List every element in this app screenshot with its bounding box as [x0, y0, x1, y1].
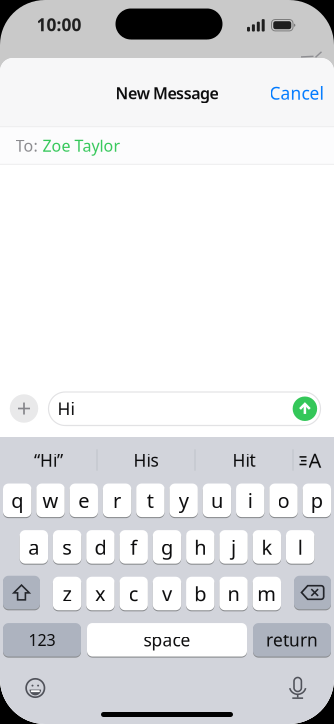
staticText: s: [62, 534, 72, 560]
staticText: return: [266, 628, 318, 651]
button[interactable]: w: [36, 483, 65, 518]
staticText: e: [78, 487, 89, 514]
button[interactable]: Emoji: [24, 677, 46, 699]
button[interactable]: t: [136, 483, 165, 518]
button[interactable]: Dictate: [289, 676, 307, 700]
button[interactable]: b: [186, 576, 214, 611]
staticText: o: [277, 487, 289, 514]
button[interactable]: Delete: [294, 575, 331, 610]
staticText: Hit: [232, 448, 255, 471]
staticText: b: [194, 580, 206, 607]
staticText: k: [261, 534, 272, 560]
staticText: A: [308, 447, 321, 473]
staticText: l: [298, 534, 303, 560]
button[interactable]: v: [153, 576, 181, 611]
button[interactable]: q: [3, 483, 31, 518]
button[interactable]: z: [53, 576, 81, 611]
staticText: h: [194, 534, 206, 560]
staticText: r: [113, 487, 121, 514]
button[interactable]: y: [169, 483, 198, 518]
button[interactable]: h: [186, 530, 214, 564]
button[interactable]: His: [101, 445, 191, 475]
staticText: 123: [28, 629, 55, 650]
button[interactable]: x: [86, 576, 115, 611]
button[interactable]: u: [203, 483, 231, 518]
button[interactable]: g: [153, 530, 181, 564]
button[interactable]: l: [286, 530, 314, 564]
staticText: space: [143, 628, 190, 651]
staticText: j: [231, 534, 236, 560]
button[interactable]: i: [236, 483, 264, 518]
staticText: w: [42, 487, 58, 514]
button[interactable]: Cancel: [269, 81, 323, 104]
staticText: New Message: [115, 82, 218, 104]
staticText: i: [248, 487, 253, 514]
staticText: To:: [15, 135, 37, 156]
button[interactable]: k: [253, 530, 281, 564]
staticText: g: [161, 534, 173, 560]
staticText: His: [133, 448, 158, 471]
button[interactable]: Space: [87, 622, 247, 657]
button[interactable]: “Hi”: [3, 445, 93, 475]
button[interactable]: j: [219, 530, 248, 564]
button[interactable]: r: [103, 483, 131, 518]
button[interactable]: Apps: [10, 394, 38, 423]
staticText: q: [11, 487, 23, 514]
button[interactable]: e: [70, 483, 98, 518]
staticText: t: [147, 487, 154, 514]
button[interactable]: d: [86, 530, 115, 564]
button[interactable]: m: [253, 576, 281, 611]
button[interactable]: Return: [253, 622, 331, 657]
staticText: Cancel: [269, 81, 323, 104]
staticText: “Hi”: [34, 448, 63, 471]
button[interactable]: p: [303, 483, 331, 518]
button[interactable]: Hit: [199, 445, 289, 475]
button[interactable]: o: [269, 483, 298, 518]
staticText: a: [28, 534, 39, 560]
staticText: 10:00: [36, 13, 81, 36]
button[interactable]: Zoe Taylor: [42, 135, 120, 156]
button[interactable]: f: [119, 530, 148, 564]
staticText: Hi: [57, 397, 74, 420]
staticText: u: [211, 487, 223, 514]
staticText: p: [311, 487, 323, 514]
button[interactable]: s: [53, 530, 81, 564]
staticText: f: [130, 534, 137, 560]
button[interactable]: Send: [293, 396, 317, 421]
button[interactable]: Numbers: [3, 622, 81, 657]
staticText: x: [95, 580, 106, 607]
staticText: d: [94, 534, 106, 560]
staticText: y: [179, 487, 189, 514]
staticText: m: [257, 580, 276, 607]
staticText: v: [162, 580, 172, 607]
staticText: Zoe Taylor: [42, 135, 120, 156]
staticText: c: [129, 580, 139, 607]
button[interactable]: n: [219, 576, 248, 611]
button[interactable]: Predictive input: [297, 450, 323, 470]
staticText: n: [227, 580, 239, 607]
button[interactable]: c: [119, 576, 148, 611]
button[interactable]: Shift: [3, 575, 40, 610]
staticText: z: [63, 580, 72, 607]
button[interactable]: a: [20, 530, 48, 564]
